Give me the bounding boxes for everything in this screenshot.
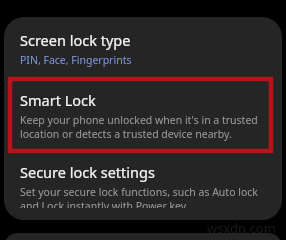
staticText: PIN, Face, Fingerprints: [20, 53, 132, 67]
staticText: wsxdn.com: [207, 219, 276, 237]
button[interactable]: Screen lock type: [4, 17, 282, 79]
staticText: Secure lock settings: [20, 162, 155, 182]
button[interactable]: Smart Lock: [4, 79, 282, 152]
button[interactable]: Secure lock settings: [4, 152, 282, 220]
staticText: location or detects a trusted device nea…: [20, 127, 232, 141]
staticText: Set your secure lock functions, such as …: [20, 185, 258, 199]
staticText: Screen lock type: [20, 30, 131, 50]
staticText: Keep your phone unlocked when it's in a …: [20, 113, 258, 127]
staticText: and Lock instantly with Power key.: [20, 199, 189, 208]
staticText: Smart Lock: [20, 90, 96, 110]
